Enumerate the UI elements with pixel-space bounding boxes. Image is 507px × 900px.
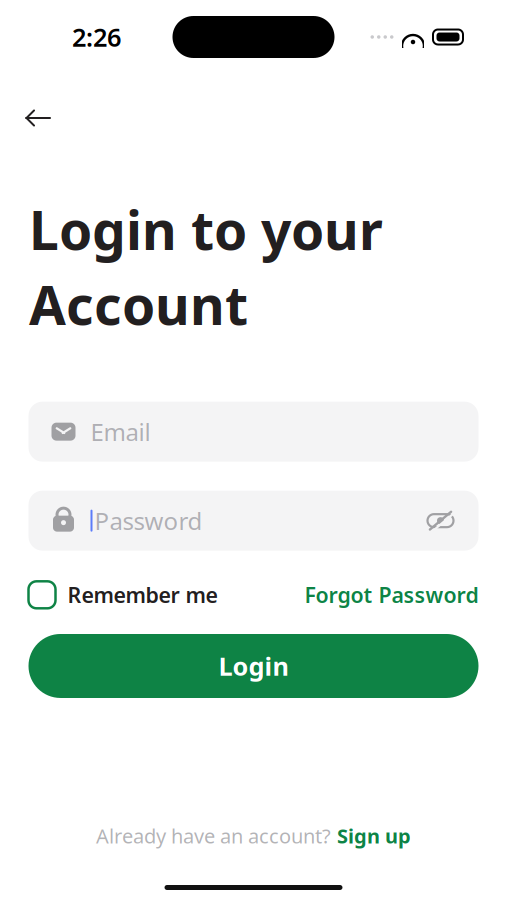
staticText: Login to your [29,194,383,265]
button[interactable]: Remember me [28,581,217,609]
button[interactable]: Password [28,491,478,551]
staticText: Forgot Password [304,581,478,609]
staticText: Account [29,269,248,340]
staticText: Login [218,649,288,683]
staticText: Sign up [337,822,411,849]
staticText: Email [90,416,150,448]
staticText: Password [94,505,202,537]
button[interactable]: Login [28,634,478,698]
staticText: Remember me [67,581,217,609]
button[interactable]: Already have an account? [96,822,411,849]
button[interactable]: Email [28,402,478,462]
button[interactable]: Forgot Password [304,581,478,609]
staticText: 2:26 [72,20,121,54]
staticText: Already have an account? [96,822,331,849]
button[interactable]: Back [16,96,60,140]
